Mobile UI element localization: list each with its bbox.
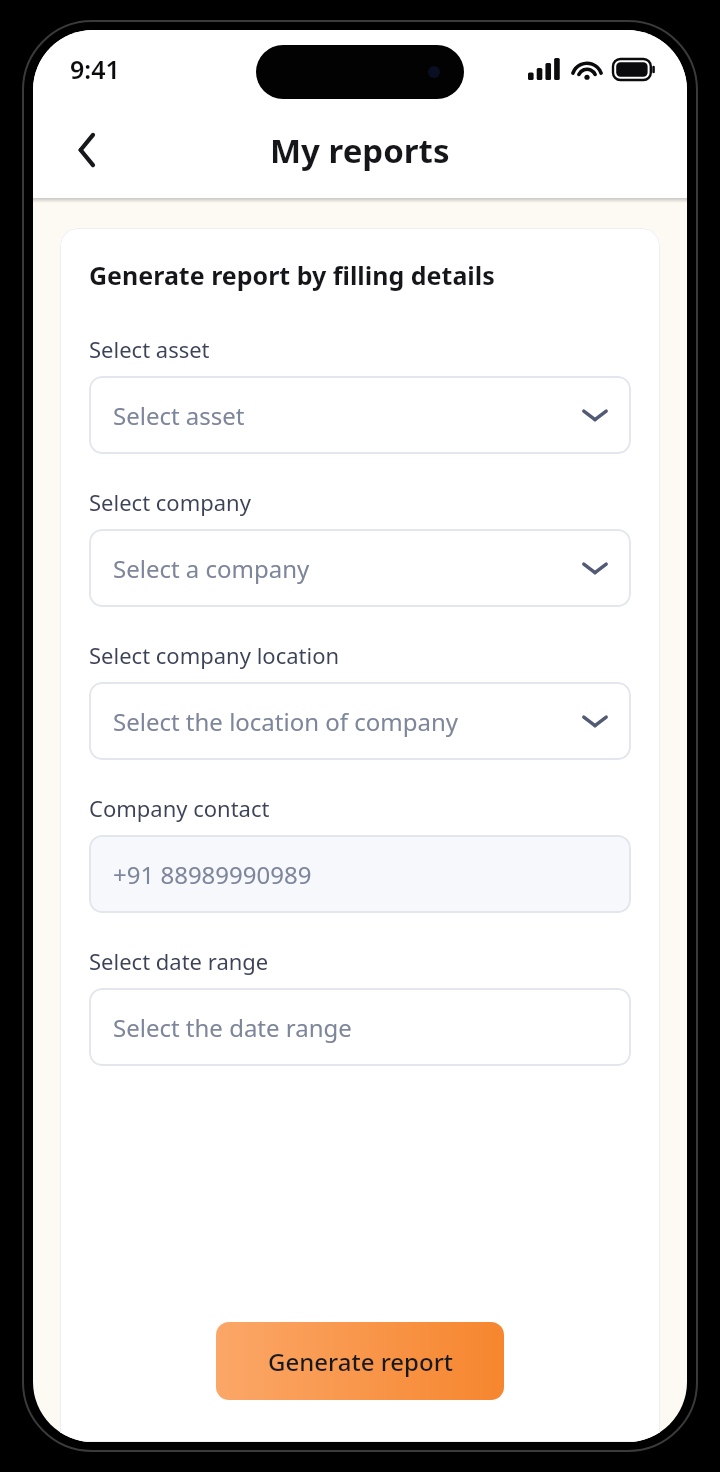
button[interactable]: Select the date range xyxy=(89,988,631,1066)
staticText: Select asset xyxy=(113,399,581,432)
button[interactable]: Back xyxy=(59,122,115,178)
staticText: 9:41 xyxy=(70,52,120,86)
staticText: Select the location of company xyxy=(113,705,581,738)
staticText: Select company location xyxy=(89,640,340,670)
button[interactable]: Select asset xyxy=(89,376,631,454)
staticText: Select a company xyxy=(113,552,581,585)
staticText: Company contact xyxy=(89,793,270,823)
staticText: Generate report xyxy=(268,1345,453,1378)
button[interactable]: Select a company xyxy=(89,529,631,607)
staticText: Select the date range xyxy=(113,1011,609,1044)
staticText: +91 88989990989 xyxy=(113,858,609,891)
staticText: Select date range xyxy=(89,946,269,976)
staticText: Select company xyxy=(89,487,251,517)
button[interactable]: Select the location of company xyxy=(89,682,631,760)
staticText: Select asset xyxy=(89,334,210,364)
staticText: Generate report by filling details xyxy=(89,258,495,292)
staticText: My reports xyxy=(270,128,450,173)
button[interactable]: Generate report xyxy=(216,1322,504,1400)
button[interactable]: +91 88989990989 xyxy=(89,835,631,913)
